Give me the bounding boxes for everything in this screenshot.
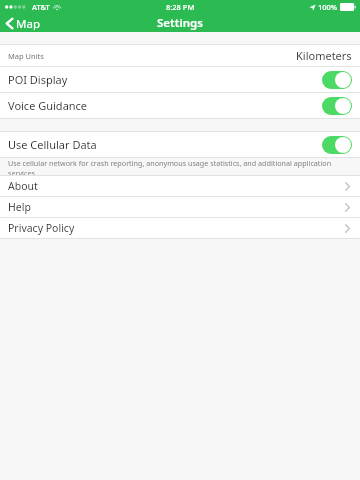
staticText: 100% (318, 2, 338, 12)
staticText: AT&T (32, 2, 50, 12)
staticText: Kilometers (296, 48, 352, 63)
staticText: Voice Guidance (8, 98, 88, 113)
button[interactable]: Help (0, 197, 360, 217)
staticText: 8:28 PM (166, 2, 195, 12)
staticText: Map (16, 16, 40, 30)
staticText: Use Cellular Data (8, 137, 97, 152)
staticText: About (8, 179, 38, 193)
button[interactable]: About (0, 176, 360, 196)
staticText: Help (8, 200, 31, 214)
staticText: Privacy Policy (8, 221, 75, 235)
staticText: POI Display (8, 72, 68, 87)
staticText: Map Units (8, 51, 44, 61)
staticText: Settings (157, 15, 203, 31)
button[interactable]: Privacy Policy (0, 218, 360, 238)
button[interactable]: Voice Guidance (0, 93, 360, 118)
other: Toggle on (322, 97, 352, 115)
button[interactable]: POI Display (0, 67, 360, 92)
button[interactable]: Map (0, 14, 48, 32)
button[interactable]: Use Cellular Data (0, 132, 360, 157)
button[interactable]: Map Units (0, 45, 360, 66)
other: Toggle on (322, 71, 352, 89)
other: Toggle on (322, 136, 352, 154)
staticText: Use cellular network for crash reporting… (8, 158, 352, 175)
